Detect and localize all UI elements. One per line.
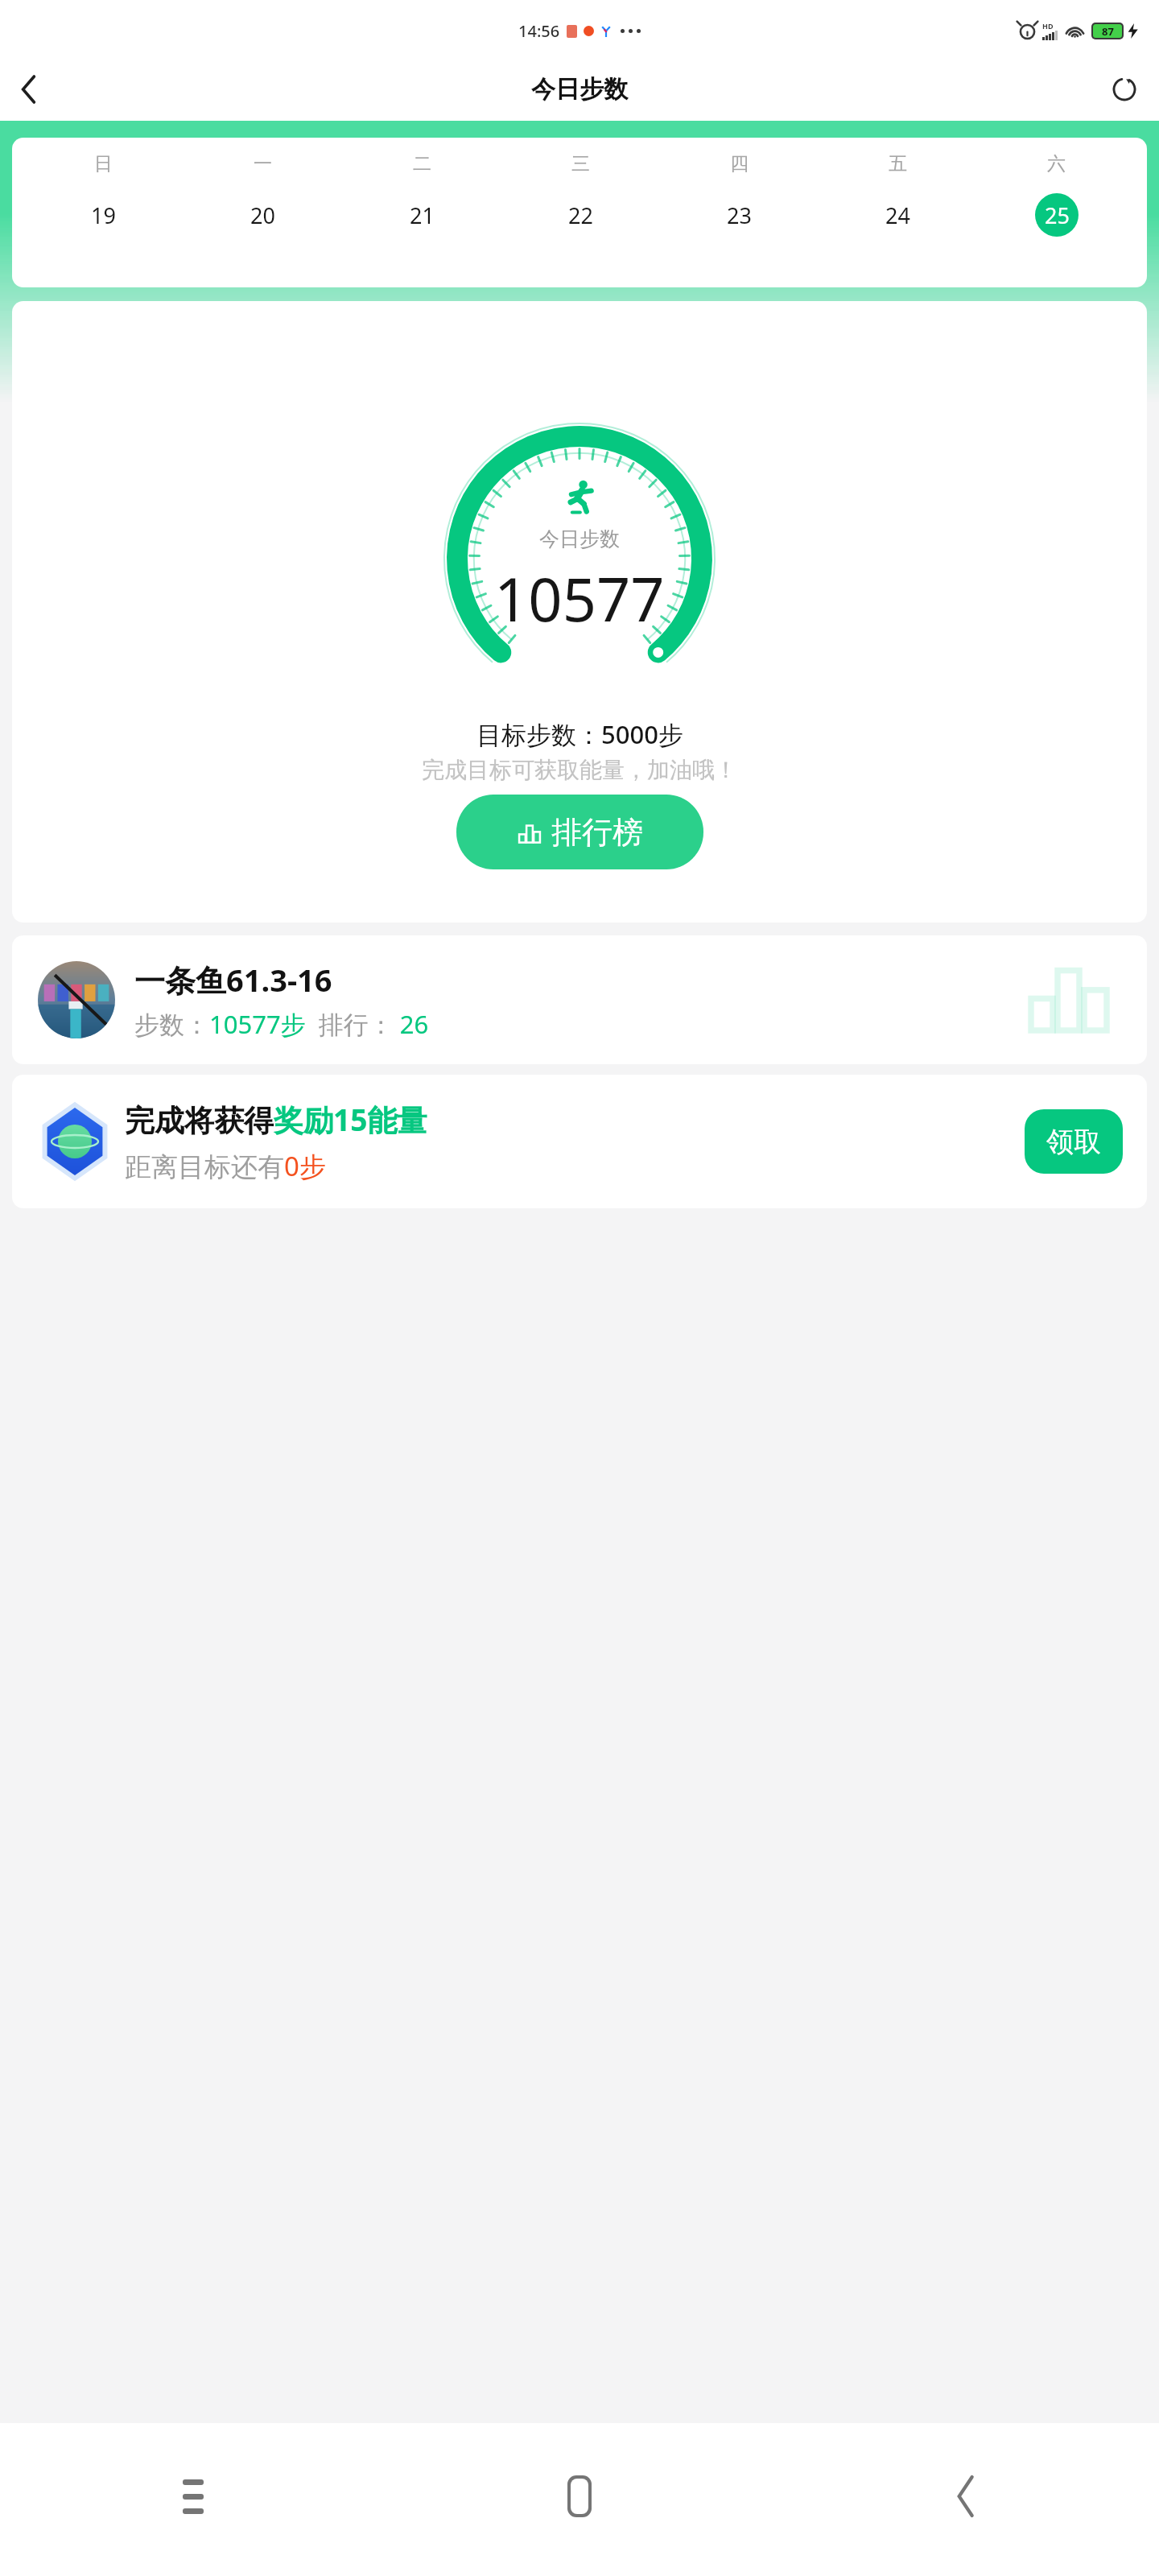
staticText: 25 bbox=[1045, 200, 1070, 230]
staticText: 目标步数：5000步 bbox=[476, 717, 683, 751]
staticText: HD bbox=[1042, 21, 1054, 31]
staticText: 步数：10577步 排行： 26 bbox=[134, 1007, 429, 1041]
staticText: 19 bbox=[91, 200, 116, 230]
staticText: 23 bbox=[727, 200, 752, 230]
staticText: 排行榜 bbox=[551, 813, 643, 852]
staticText: 21 bbox=[410, 200, 435, 230]
staticText: 20 bbox=[250, 200, 275, 230]
button[interactable]: 22 bbox=[501, 193, 660, 237]
staticText: 22 bbox=[568, 200, 593, 230]
button[interactable]: Refresh bbox=[1101, 66, 1148, 113]
staticText: 三 bbox=[571, 152, 590, 175]
button[interactable]: 20 bbox=[183, 193, 342, 237]
staticText: 24 bbox=[885, 200, 910, 230]
staticText: 一条鱼61.3-16 bbox=[134, 959, 332, 1001]
staticText: 六 bbox=[1047, 152, 1066, 175]
staticText: 今日步数 bbox=[539, 526, 620, 551]
staticText: 一 bbox=[254, 152, 272, 175]
staticText: 87 bbox=[1102, 24, 1114, 39]
button[interactable]: Back bbox=[6, 67, 52, 112]
staticText: 二 bbox=[413, 152, 431, 175]
button[interactable]: Home bbox=[386, 2452, 773, 2541]
button[interactable]: 25 bbox=[977, 193, 1136, 237]
staticText: 日 bbox=[94, 152, 113, 175]
button[interactable]: 19 bbox=[23, 193, 183, 237]
button[interactable]: 领取 bbox=[1025, 1109, 1123, 1174]
staticText: 今日步数 bbox=[531, 74, 628, 105]
button[interactable]: 排行榜 bbox=[456, 795, 703, 869]
staticText: 完成目标可获取能量，加油哦！ bbox=[422, 756, 737, 784]
staticText: 完成将获得奖励15能量 bbox=[125, 1099, 427, 1140]
staticText: 14:56 bbox=[518, 20, 560, 42]
button[interactable]: 24 bbox=[819, 193, 977, 237]
button[interactable]: 23 bbox=[660, 193, 819, 237]
button[interactable]: Recents bbox=[0, 2452, 386, 2541]
staticText: 距离目标还有0步 bbox=[125, 1148, 326, 1184]
staticText: 领取 bbox=[1046, 1125, 1101, 1159]
button[interactable]: Back bbox=[773, 2452, 1159, 2541]
staticText: 五 bbox=[889, 152, 907, 175]
staticText: 四 bbox=[730, 152, 749, 175]
staticText: 10577 bbox=[494, 558, 665, 639]
button[interactable]: 21 bbox=[342, 193, 501, 237]
button[interactable]: 一条鱼61.3-16 bbox=[12, 935, 1147, 1064]
